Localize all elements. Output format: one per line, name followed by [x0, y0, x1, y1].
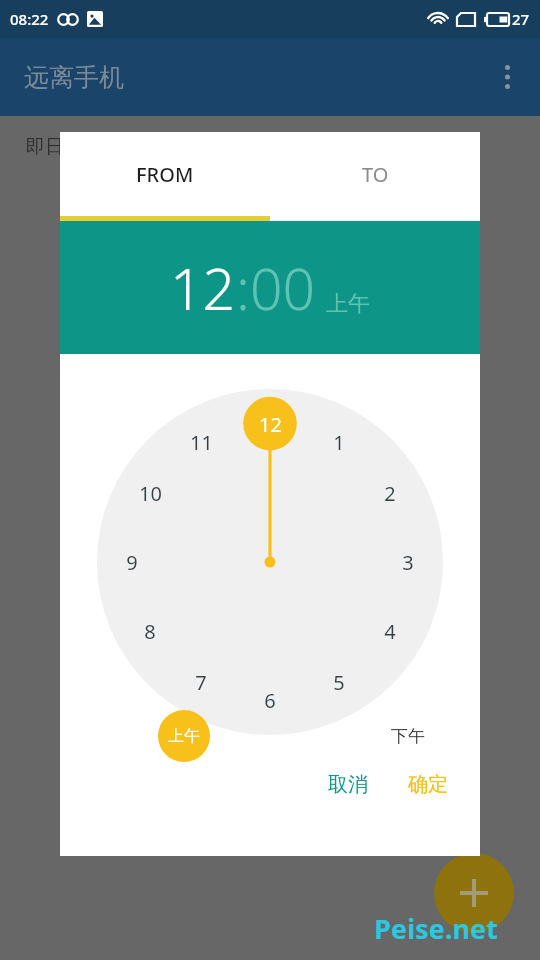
button[interactable]: 下午 — [376, 710, 440, 762]
staticText: 6 — [264, 687, 276, 714]
button[interactable]: 确定 — [388, 758, 480, 811]
staticText: 上午 — [326, 290, 370, 318]
staticText: 2 — [384, 480, 396, 507]
button[interactable]: 上午 — [158, 710, 210, 762]
staticText: 即日 — [26, 135, 64, 159]
staticText: FROM — [136, 161, 194, 188]
staticText: 11 — [190, 429, 213, 456]
staticText: 12 — [170, 249, 236, 327]
staticText: :00 — [236, 249, 316, 327]
staticText: 取消 — [328, 772, 368, 797]
button[interactable]: 取消 — [308, 758, 388, 811]
staticText: 上午 — [168, 726, 200, 746]
staticText: 7 — [195, 669, 207, 696]
button[interactable]: Add — [434, 853, 514, 933]
button[interactable]: FROM — [60, 132, 270, 216]
staticText: 10 — [139, 480, 162, 507]
staticText: 3 — [402, 549, 414, 576]
staticText: 5 — [333, 669, 345, 696]
staticText: 12 — [259, 411, 282, 438]
staticText: 下午 — [391, 726, 425, 747]
staticText: Peise.net — [374, 910, 498, 947]
staticText: 确定 — [408, 772, 448, 797]
staticText: 08:22 — [10, 9, 49, 29]
staticText: 远离手机 — [24, 62, 124, 93]
staticText: 9 — [126, 549, 138, 576]
staticText: TO — [362, 161, 389, 188]
staticText: 8 — [144, 618, 156, 645]
staticText: 27 — [512, 9, 530, 29]
staticText: 1 — [333, 429, 345, 456]
button[interactable]: More options — [484, 54, 530, 100]
button[interactable]: TO — [270, 132, 480, 216]
staticText: 4 — [384, 618, 396, 645]
